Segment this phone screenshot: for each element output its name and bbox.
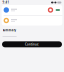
button[interactable]: [2, 5, 62, 15]
button[interactable]: Continue: [2, 41, 62, 47]
staticText: 9:41: [3, 1, 10, 4]
staticText: Continue: [25, 43, 39, 46]
button[interactable]: [2, 15, 62, 25]
staticText: Summary: [3, 28, 17, 32]
